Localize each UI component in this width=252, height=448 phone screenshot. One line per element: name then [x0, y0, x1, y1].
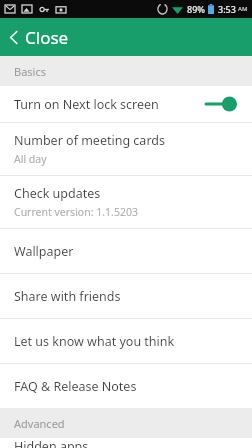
button[interactable]: Share with friends — [0, 274, 252, 318]
staticText: Check updates — [14, 185, 101, 202]
button[interactable]: Hidden apps — [0, 438, 252, 448]
button[interactable]: Wallpaper — [0, 229, 252, 273]
staticText: Basics — [14, 64, 46, 79]
button[interactable]: Turn on Next lock screen — [0, 86, 252, 122]
staticText: FAQ & Release Notes — [14, 378, 137, 395]
staticText: Advanced — [14, 416, 65, 431]
staticText: Hidden apps — [14, 438, 89, 448]
staticText: Wallpaper — [14, 243, 74, 260]
staticText: Current version: 1.1.5203 — [14, 205, 138, 219]
button[interactable]: Check updates — [0, 176, 252, 228]
button[interactable]: Number of meeting cards — [0, 123, 252, 175]
button[interactable]: Back — [0, 18, 85, 56]
staticText: Share with friends — [14, 288, 121, 305]
staticText: AM — [238, 5, 248, 13]
staticText: Close — [25, 26, 69, 48]
staticText: 89% — [187, 3, 205, 15]
button[interactable]: FAQ & Release Notes — [0, 364, 252, 408]
staticText: Let us know what you think — [14, 333, 175, 350]
staticText: Turn on Next lock screen — [14, 96, 204, 113]
other: Back — [10, 31, 18, 44]
staticText: All day — [14, 152, 47, 166]
staticText: 3:53 — [218, 3, 236, 15]
staticText: Number of meeting cards — [14, 132, 165, 149]
button[interactable]: Let us know what you think — [0, 319, 252, 363]
